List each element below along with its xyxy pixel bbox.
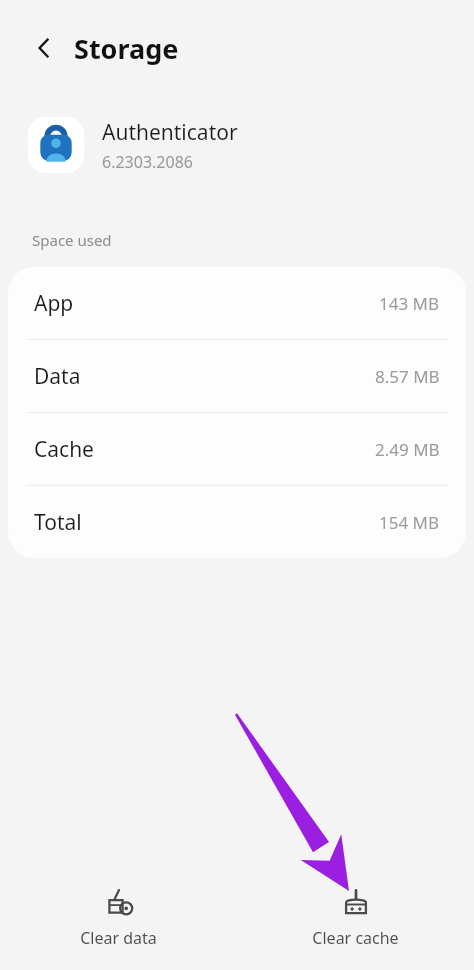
staticText: Total [34, 508, 82, 537]
staticText: Storage [74, 30, 179, 67]
other: Clear data [104, 888, 134, 918]
staticText: Clear data [80, 927, 157, 949]
button[interactable]: App [8, 267, 466, 339]
staticText: Data [34, 362, 81, 391]
staticText: 6.2303.2086 [102, 151, 193, 173]
button[interactable]: Data [8, 340, 466, 412]
staticText: 2.49 MB [375, 438, 440, 461]
staticText: Clear cache [312, 927, 399, 949]
staticText: Space used [32, 230, 112, 250]
staticText: 8.57 MB [375, 365, 440, 388]
other: Clear cache [341, 888, 371, 918]
button[interactable]: Back [22, 26, 66, 70]
staticText: Cache [34, 435, 94, 464]
staticText: 143 MB [379, 292, 440, 315]
staticText: 154 MB [379, 511, 440, 534]
button[interactable]: Clear data [0, 882, 237, 955]
button[interactable]: Total [8, 486, 466, 558]
staticText: App [34, 289, 74, 318]
staticText: Authenticator [102, 118, 238, 147]
button[interactable]: Clear cache [237, 882, 474, 955]
button[interactable]: Cache [8, 413, 466, 485]
